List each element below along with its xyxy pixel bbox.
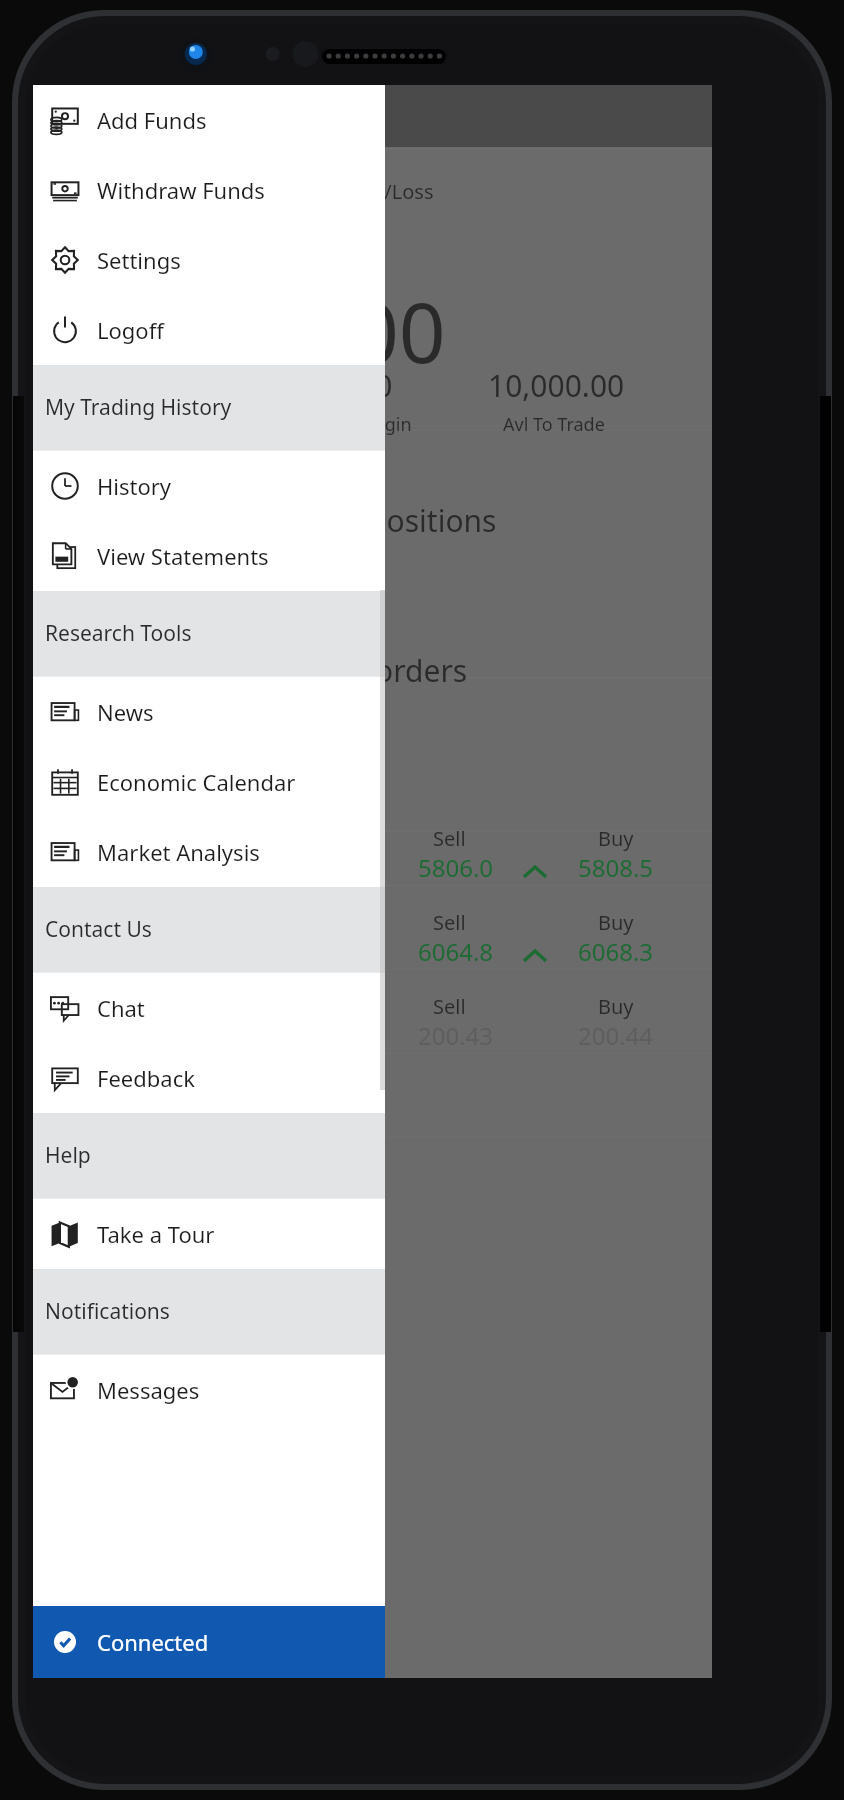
button[interactable]: Settings [33, 225, 385, 295]
staticText: Contact Us [45, 915, 152, 944]
staticText: 6068.3 [578, 935, 654, 968]
other: Settings [49, 244, 81, 276]
button[interactable]: Chat [33, 973, 385, 1043]
staticText: Buy [598, 993, 634, 1020]
staticText: Economic Calendar [97, 767, 296, 797]
staticText: Buy [598, 909, 634, 936]
other: Withdraw Funds [49, 174, 81, 206]
other: News [49, 696, 81, 728]
staticText: Sell [433, 909, 466, 936]
button[interactable]: Messages [33, 1355, 385, 1425]
staticText: Connected [97, 1627, 209, 1657]
staticText: Withdraw Funds [97, 175, 265, 205]
staticText: Add Funds [97, 105, 207, 135]
button[interactable]: Feedback [33, 1043, 385, 1113]
staticText: 10,000.00 [488, 365, 625, 406]
staticText: Active orders [283, 650, 468, 691]
other: Chat [49, 992, 81, 1024]
button[interactable]: News [33, 817, 385, 887]
staticText: Margin [351, 412, 412, 437]
staticText: Help [45, 1141, 91, 1170]
button[interactable]: Economic Calendar [33, 747, 385, 817]
staticText: 0.00 [283, 275, 446, 387]
staticText: Sell [433, 993, 466, 1020]
other: Messages [49, 1374, 81, 1406]
other: View Statements [49, 540, 81, 572]
staticText: News [97, 697, 154, 727]
staticText: View Statements [97, 541, 269, 571]
staticText: Open positions [283, 500, 497, 541]
staticText: Notifications [45, 1297, 170, 1326]
button[interactable]: News [33, 677, 385, 747]
staticText: Research Tools [45, 619, 192, 648]
staticText: Avl To Trade [503, 412, 605, 437]
other: Take a Tour [49, 1218, 81, 1250]
staticText: History [97, 471, 172, 501]
staticText: Feedback [97, 1063, 195, 1093]
staticText: Sell [433, 825, 466, 852]
button[interactable]: Take a Tour [33, 1199, 385, 1269]
staticText: Buy [598, 825, 634, 852]
button[interactable]: Add Funds [33, 85, 385, 155]
staticText: Market Analysis [97, 837, 260, 867]
staticText: 0.00 [333, 365, 393, 406]
button[interactable]: Logoff [33, 295, 385, 365]
staticText: Profit/Loss [333, 178, 434, 205]
other: Feedback [49, 1062, 81, 1094]
staticText: Messages [97, 1375, 200, 1405]
staticText: 6064.8 [418, 935, 494, 968]
staticText: 5806.0 [418, 851, 494, 884]
staticText: 200.43 [418, 1019, 494, 1052]
other: Economic Calendar [49, 766, 81, 798]
button[interactable]: Connected [33, 1606, 385, 1678]
staticText: My Trading History [45, 393, 232, 422]
staticText: Logoff [97, 315, 164, 345]
other: Logoff [49, 314, 81, 346]
other: News [49, 836, 81, 868]
other: History [49, 470, 81, 502]
button[interactable]: View Statements [33, 521, 385, 591]
staticText: 5808.5 [578, 851, 654, 884]
staticText: Chat [97, 993, 145, 1023]
other: Add Funds [49, 104, 81, 136]
button[interactable]: Withdraw Funds [33, 155, 385, 225]
button[interactable]: History [33, 451, 385, 521]
staticText: Settings [97, 245, 181, 275]
staticText: Take a Tour [97, 1219, 215, 1249]
staticText: 200.44 [578, 1019, 654, 1052]
